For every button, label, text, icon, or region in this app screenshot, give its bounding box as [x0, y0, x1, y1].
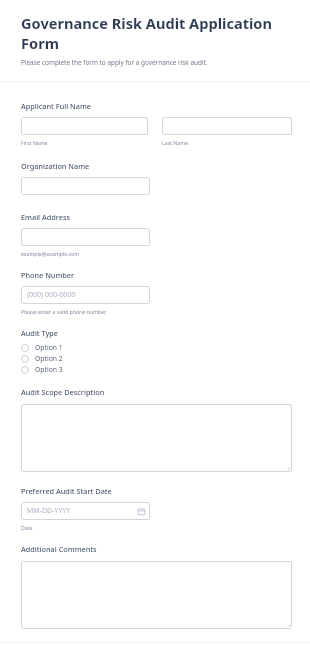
button[interactable] — [21, 117, 148, 135]
button[interactable]: Option 3 — [21, 364, 292, 375]
staticText: Date — [21, 524, 33, 531]
button[interactable] — [21, 561, 292, 629]
staticText: Option 1 — [35, 343, 63, 352]
button[interactable] — [21, 228, 150, 246]
staticText: (000) 000-0000 — [27, 290, 76, 300]
button[interactable]: MM-DD-YYYY — [21, 502, 150, 520]
staticText: First Name — [21, 139, 48, 146]
button[interactable]: Option 1 — [21, 342, 292, 353]
button[interactable] — [162, 117, 292, 135]
staticText: Please enter a valid phone number. — [21, 308, 107, 315]
staticText: MM-DD-YYYY — [27, 506, 71, 516]
staticText: Preferred Audit Start Date — [21, 486, 112, 496]
staticText: Audit Type — [21, 328, 59, 338]
button[interactable]: Option 2 — [21, 353, 292, 364]
staticText: Email Address — [21, 212, 71, 222]
staticText: Phone Number — [21, 270, 75, 280]
staticText: Additional Comments — [21, 544, 97, 554]
staticText: example@example.com — [21, 250, 80, 257]
button[interactable] — [21, 177, 150, 195]
staticText: Organization Name — [21, 161, 90, 171]
staticText: Option 2 — [35, 354, 63, 363]
staticText: Audit Scope Description — [21, 387, 105, 397]
staticText: Option 3 — [35, 365, 63, 374]
staticText: Governance Risk Audit Application Form — [21, 13, 292, 53]
staticText: Last Name — [162, 139, 188, 146]
button[interactable]: (000) 000-0000 — [21, 286, 150, 304]
button[interactable] — [21, 404, 292, 472]
staticText: Please complete the form to apply for a … — [21, 58, 208, 67]
other: Open date picker — [138, 508, 145, 515]
staticText: Applicant Full Name — [21, 101, 91, 111]
